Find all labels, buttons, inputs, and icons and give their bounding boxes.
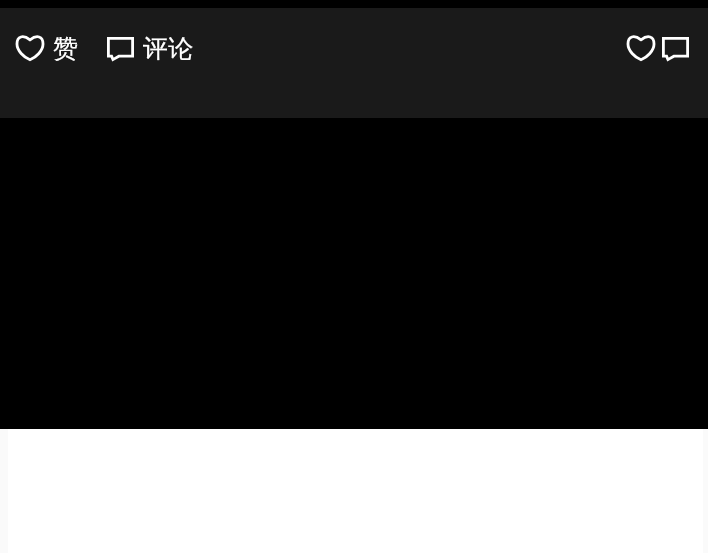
button[interactable]: Comment — [652, 27, 699, 71]
staticText: 赞 — [53, 33, 78, 61]
button[interactable]: 赞 — [6, 23, 92, 71]
button[interactable]: 评论 — [97, 24, 207, 72]
button[interactable]: Like — [617, 24, 665, 72]
staticText: 评论 — [143, 33, 193, 61]
